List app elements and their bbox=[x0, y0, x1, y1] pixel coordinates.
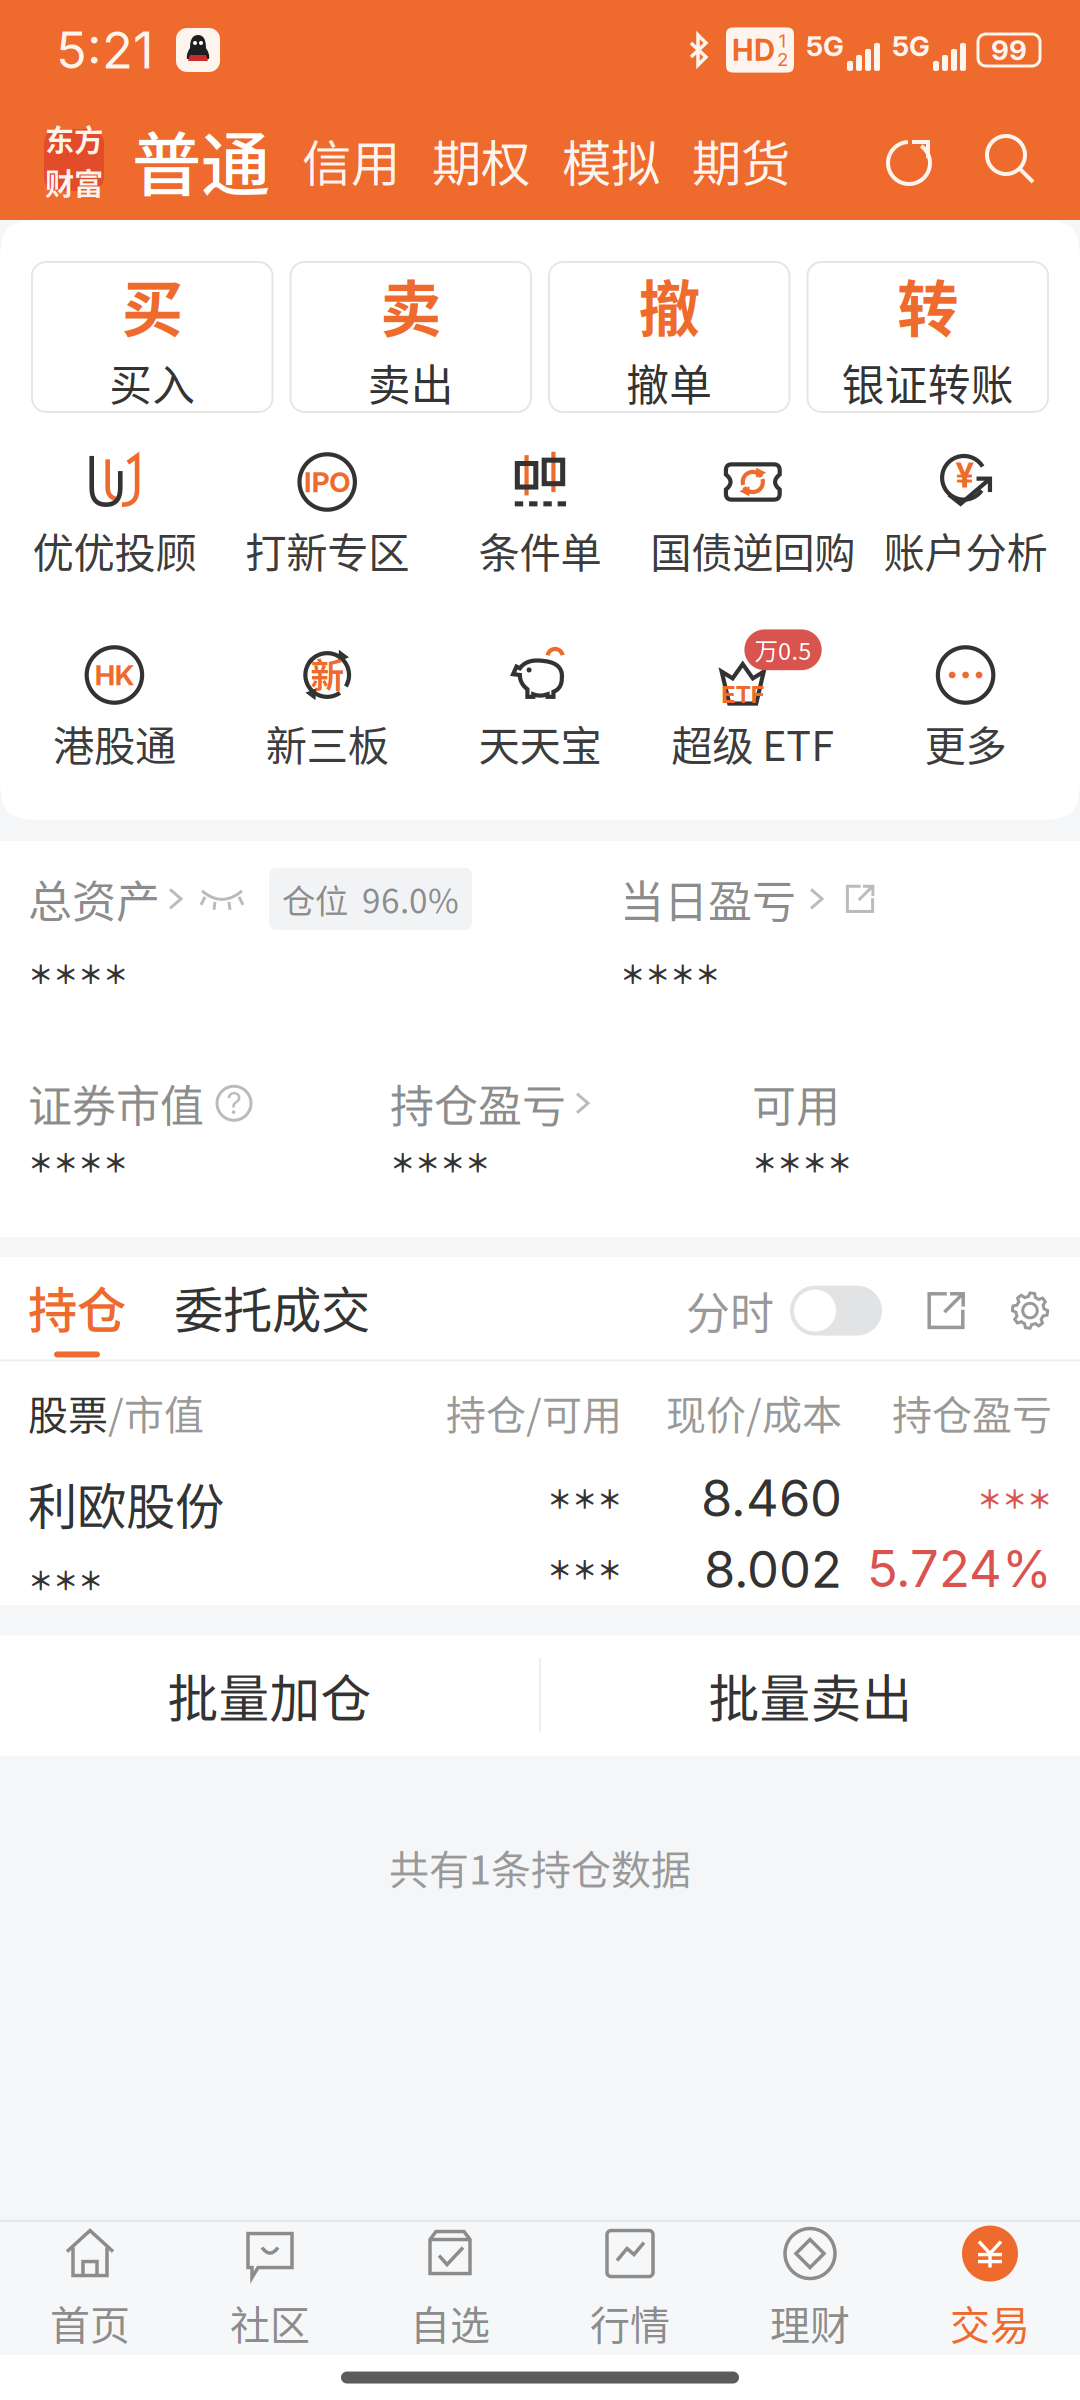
button[interactable]: 国债逆回购 bbox=[646, 448, 859, 641]
staticText: 国债逆回购 bbox=[650, 520, 855, 580]
button[interactable]: 条件单 bbox=[434, 448, 646, 641]
staticText: 超级 ETF bbox=[671, 713, 834, 773]
staticText: 财富 bbox=[45, 160, 103, 203]
staticText: 期权 bbox=[432, 124, 530, 196]
staticText: 8.460 bbox=[701, 1467, 842, 1529]
button[interactable]: 分享 bbox=[882, 1291, 966, 1331]
button[interactable]: HK bbox=[8, 641, 221, 831]
button[interactable]: 行情 bbox=[540, 2222, 720, 2355]
staticText: 信用 bbox=[302, 124, 400, 196]
button[interactable]: 证券市值 bbox=[28, 1071, 251, 1135]
button[interactable]: 转 bbox=[807, 262, 1048, 412]
staticText: 撤单 bbox=[626, 351, 712, 413]
button[interactable]: 更多 bbox=[859, 641, 1072, 831]
staticText: 买入 bbox=[109, 351, 195, 413]
staticText: HK bbox=[91, 655, 138, 695]
staticText: 5G bbox=[806, 29, 844, 63]
staticText: HD bbox=[732, 32, 775, 68]
button[interactable]: 刷新 bbox=[882, 132, 938, 188]
staticText: 2 bbox=[777, 48, 788, 71]
staticText: IPO bbox=[300, 462, 355, 502]
staticText: 8.002 bbox=[704, 1539, 842, 1600]
button[interactable]: 总资产 bbox=[28, 867, 472, 931]
button[interactable]: 理财 bbox=[720, 2222, 900, 2355]
button[interactable]: 优优投顾 bbox=[8, 448, 221, 641]
button[interactable]: ¥ bbox=[859, 448, 1072, 641]
staticText: /市值 bbox=[108, 1383, 204, 1441]
staticText: 条件单 bbox=[478, 520, 601, 580]
button[interactable]: 持仓 bbox=[28, 1271, 126, 1357]
staticText: 自选 bbox=[410, 2293, 490, 2351]
staticText: 1 bbox=[778, 29, 786, 52]
staticText: ＊＊＊＊ bbox=[28, 1143, 128, 1180]
staticText: 打新专区 bbox=[245, 520, 409, 580]
staticText: 普通 bbox=[132, 110, 270, 210]
staticText: 批量卖出 bbox=[708, 1659, 912, 1732]
button[interactable]: 自选 bbox=[360, 2222, 540, 2355]
staticText: ? bbox=[226, 1085, 241, 1121]
staticText: 转 bbox=[897, 261, 958, 349]
staticText: 可用 bbox=[752, 1071, 840, 1135]
button[interactable]: 新 bbox=[221, 641, 434, 831]
staticText: 万0.5 bbox=[755, 625, 823, 665]
staticText: 利欧股份 bbox=[28, 1467, 224, 1539]
staticText: ＊＊＊ bbox=[547, 1479, 622, 1516]
button[interactable]: IPO bbox=[221, 448, 434, 641]
staticText: ＊＊＊＊ bbox=[28, 955, 128, 991]
staticText: ＊＊＊＊ bbox=[620, 955, 720, 991]
staticText: 新三板 bbox=[266, 713, 389, 773]
button[interactable]: 社区 bbox=[180, 2222, 360, 2355]
staticText: ¥ bbox=[954, 450, 976, 498]
staticText: 股票 bbox=[28, 1383, 108, 1441]
staticText: 模拟 bbox=[562, 124, 660, 196]
button[interactable]: 期权 bbox=[400, 124, 530, 196]
button[interactable]: 天天宝 bbox=[434, 641, 646, 831]
button[interactable]: 批量加仓 bbox=[0, 1635, 539, 1755]
staticText: 仓位 96.0% bbox=[282, 875, 459, 923]
staticText: ＊＊＊ bbox=[977, 1479, 1052, 1516]
button[interactable]: 设置 bbox=[966, 1289, 1052, 1333]
staticText: 共有1条持仓数据 bbox=[389, 1838, 691, 1896]
staticText: 买 bbox=[122, 261, 183, 349]
button[interactable]: 东方财富 bbox=[44, 129, 104, 191]
staticText: 5.724% bbox=[867, 1538, 1052, 1599]
button[interactable]: 搜索 bbox=[938, 132, 1038, 188]
staticText: 5G bbox=[892, 29, 930, 63]
button[interactable]: 持仓盈亏 bbox=[390, 1071, 589, 1135]
staticText: 期货 bbox=[692, 124, 790, 196]
button[interactable]: 当日盈亏 bbox=[620, 867, 875, 931]
button[interactable]: 分时开关 bbox=[774, 1286, 882, 1336]
button[interactable]: 买 bbox=[32, 262, 272, 412]
button[interactable]: 委托成交 bbox=[126, 1271, 370, 1357]
staticText: ＊＊＊ bbox=[547, 1550, 622, 1587]
button[interactable]: 撤 bbox=[549, 262, 789, 412]
button[interactable]: 期货 bbox=[660, 124, 790, 196]
button[interactable]: ETF bbox=[646, 641, 859, 831]
staticText: 分时 bbox=[686, 1279, 774, 1342]
staticText: ＊＊＊＊ bbox=[752, 1143, 852, 1180]
staticText: 证券市值 bbox=[28, 1071, 204, 1135]
button[interactable]: 卖 bbox=[290, 262, 531, 412]
staticText: 东方 bbox=[45, 117, 103, 159]
staticText: 卖出 bbox=[368, 351, 454, 413]
staticText: 现价/成本 bbox=[666, 1383, 842, 1441]
staticText: ＊＊＊＊ bbox=[390, 1143, 490, 1180]
staticText: 持仓 bbox=[28, 1271, 126, 1342]
button[interactable]: 普通 bbox=[104, 110, 270, 210]
button[interactable]: 信用 bbox=[270, 124, 400, 196]
staticText: 持仓盈亏 bbox=[390, 1071, 566, 1135]
staticText: 当日盈亏 bbox=[620, 867, 796, 931]
button[interactable]: 模拟 bbox=[530, 124, 660, 196]
staticText: 交易 bbox=[950, 2293, 1030, 2351]
staticText: 撤 bbox=[639, 261, 700, 349]
button[interactable]: 首页 bbox=[0, 2222, 180, 2355]
staticText: 委托成交 bbox=[174, 1271, 370, 1342]
staticText: 理财 bbox=[770, 2293, 850, 2351]
button[interactable]: 交易 bbox=[900, 2222, 1080, 2355]
staticText: 天天宝 bbox=[478, 713, 601, 773]
button[interactable]: 批量卖出 bbox=[541, 1635, 1080, 1755]
staticText: 5:21 bbox=[56, 19, 154, 81]
staticText: 批量加仓 bbox=[167, 1659, 371, 1732]
staticText: 持仓盈亏 bbox=[892, 1383, 1052, 1441]
staticText: 社区 bbox=[230, 2293, 310, 2351]
